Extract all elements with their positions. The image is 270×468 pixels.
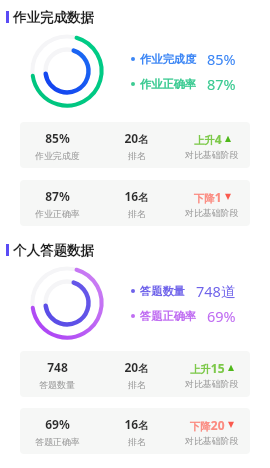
staticText: 个人答题数据 (13, 242, 94, 259)
staticText: 87% (207, 74, 236, 94)
staticText: 作业完成度 (35, 150, 80, 161)
button[interactable]: 作业完成数据 (0, 6, 270, 28)
staticText: 作业完成数据 (13, 9, 94, 26)
staticText: 答题数量 (39, 379, 75, 390)
staticText: 20名 (124, 130, 149, 146)
staticText: 排名 (128, 379, 146, 390)
staticText: 对比基础阶段 (185, 149, 239, 160)
staticText: 答题数量 (140, 284, 185, 298)
staticText: 排名 (128, 150, 146, 161)
staticText: 下降20 (190, 417, 225, 433)
staticText: 作业正确率 (35, 208, 80, 219)
staticText: 对比基础阶段 (185, 435, 239, 446)
staticText: 748 (47, 359, 68, 375)
staticText: 作业完成度 (140, 52, 196, 66)
staticText: 上升15 (190, 360, 225, 376)
button[interactable]: 个人答题数据 (0, 239, 270, 261)
staticText: 答题正确率 (35, 436, 80, 447)
staticText: 作业正确率 (140, 77, 196, 91)
staticText: 上升4 (194, 131, 222, 147)
staticText: 748道 (196, 281, 236, 301)
staticText: 85% (207, 49, 236, 69)
button[interactable]: 69% (20, 408, 250, 454)
button[interactable]: 87% (20, 180, 250, 226)
button[interactable]: 作业正确率 (131, 74, 236, 94)
staticText: 69% (207, 306, 236, 326)
staticText: 16名 (124, 416, 149, 432)
button[interactable]: 748 (20, 351, 250, 397)
staticText: 排名 (128, 436, 146, 447)
staticText: 排名 (128, 208, 146, 219)
staticText: 16名 (124, 188, 149, 204)
staticText: 85% (45, 130, 70, 146)
staticText: 87% (45, 188, 70, 204)
staticText: 下降1 (194, 189, 222, 205)
button[interactable]: 答题数量 (131, 281, 236, 301)
button[interactable]: 85% (20, 122, 250, 168)
staticText: 答题正确率 (140, 309, 196, 323)
button[interactable]: 作业完成度 (131, 49, 236, 69)
staticText: 69% (45, 416, 70, 432)
staticText: 对比基础阶段 (185, 207, 239, 218)
button[interactable]: 答题正确率 (131, 306, 236, 326)
staticText: 对比基础阶段 (185, 378, 239, 389)
staticText: 20名 (124, 359, 149, 375)
